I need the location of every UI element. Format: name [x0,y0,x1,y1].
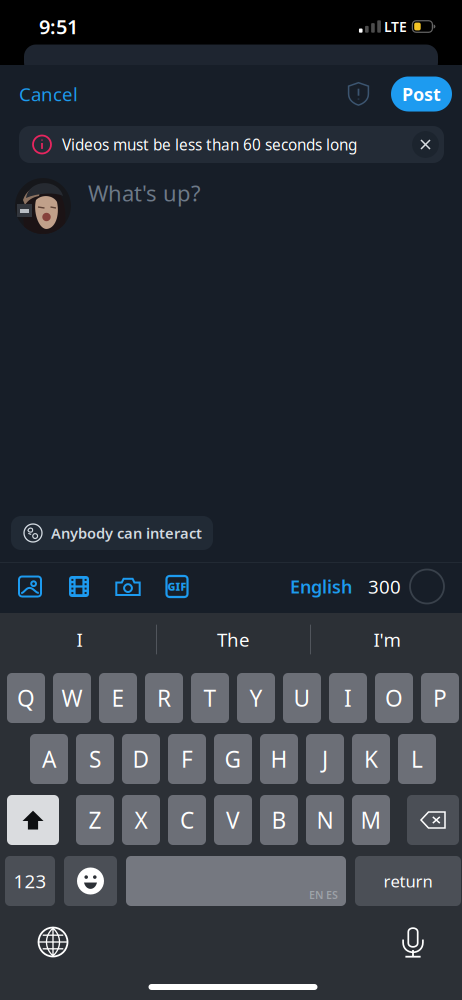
button[interactable]: M [352,795,390,845]
button[interactable]: Add photo [9,565,51,607]
button[interactable]: Space [126,856,346,906]
button[interactable]: Delete [407,795,459,845]
button[interactable]: Y [237,673,275,723]
staticText: The [217,627,250,652]
button[interactable]: Audience and reply settings [335,72,382,115]
staticText: Q [17,683,35,713]
button[interactable]: Cancel [0,67,97,121]
button[interactable]: Z [76,795,114,845]
button[interactable]: Add GIF [156,565,198,607]
staticText: English [290,574,352,599]
staticText: A [42,744,56,774]
staticText: X [134,805,147,835]
staticText: 123 [13,868,46,894]
staticText: V [226,805,240,835]
staticText: 300 [368,574,401,599]
button[interactable]: 123 [5,856,55,906]
button[interactable]: K [352,734,390,784]
button[interactable]: Dismiss warning [412,131,439,158]
button[interactable]: I [329,673,367,723]
button[interactable]: W [53,673,91,723]
button[interactable]: O [375,673,413,723]
button[interactable]: R [145,673,183,723]
button[interactable]: P [421,673,459,723]
button[interactable]: Q [7,673,45,723]
button[interactable]: I'm [311,613,462,666]
button[interactable]: T [191,673,229,723]
staticText: 9:51 [39,13,78,40]
staticText: G [224,744,241,774]
staticText: F [181,744,193,774]
staticText: K [364,744,378,774]
staticText: N [316,805,333,835]
button[interactable]: Anybody can interact [11,516,213,550]
staticText: GIF [167,579,186,594]
button[interactable]: V [214,795,252,845]
staticText: What's up? [88,178,201,208]
button[interactable]: English [290,562,352,611]
button[interactable]: A [30,734,68,784]
button[interactable]: C [168,795,206,845]
staticText: Anybody can interact [51,523,202,543]
staticText: Y [249,683,262,713]
button[interactable]: Dictate [383,918,443,966]
button[interactable]: S [76,734,114,784]
staticText: Z [88,805,101,835]
staticText: E [111,683,124,713]
staticText: D [132,744,149,774]
button[interactable]: Switch keyboard [23,918,83,966]
button[interactable]: return [355,856,461,906]
button[interactable]: G [214,734,252,784]
staticText: R [157,683,171,713]
staticText: T [203,683,216,713]
staticText: Videos must be less than 60 seconds long [62,134,357,155]
staticText: I [76,627,82,652]
staticText: LTE [384,17,407,36]
staticText: return [383,870,432,892]
staticText: W [61,683,82,713]
button[interactable]: Post [391,76,452,111]
button[interactable]: H [260,734,298,784]
staticText: U [293,683,310,713]
button[interactable]: U [283,673,321,723]
staticText: O [385,683,403,713]
button[interactable]: Camera [107,565,149,607]
staticText: M [360,805,381,835]
staticText: EN ES [309,887,338,902]
button[interactable]: Shift [7,795,59,845]
staticText: I [344,683,352,713]
staticText: P [433,683,447,713]
staticText: Post [402,82,441,106]
staticText: H [270,744,287,774]
staticText: L [411,744,423,774]
staticText: J [322,744,328,774]
staticText: S [89,744,101,774]
staticText: B [271,805,286,835]
button[interactable]: B [260,795,298,845]
button[interactable]: The [157,613,310,666]
button[interactable]: I [3,613,156,666]
button[interactable]: Emoji [64,856,117,906]
button[interactable]: X [122,795,160,845]
button[interactable]: D [122,734,160,784]
button[interactable]: Add video [58,565,100,607]
button[interactable]: N [306,795,344,845]
staticText: I'm [373,627,400,652]
staticText: C [180,805,194,835]
button[interactable]: F [168,734,206,784]
button[interactable]: E [99,673,137,723]
staticText: Cancel [19,81,78,107]
button[interactable]: J [306,734,344,784]
button[interactable]: L [398,734,436,784]
